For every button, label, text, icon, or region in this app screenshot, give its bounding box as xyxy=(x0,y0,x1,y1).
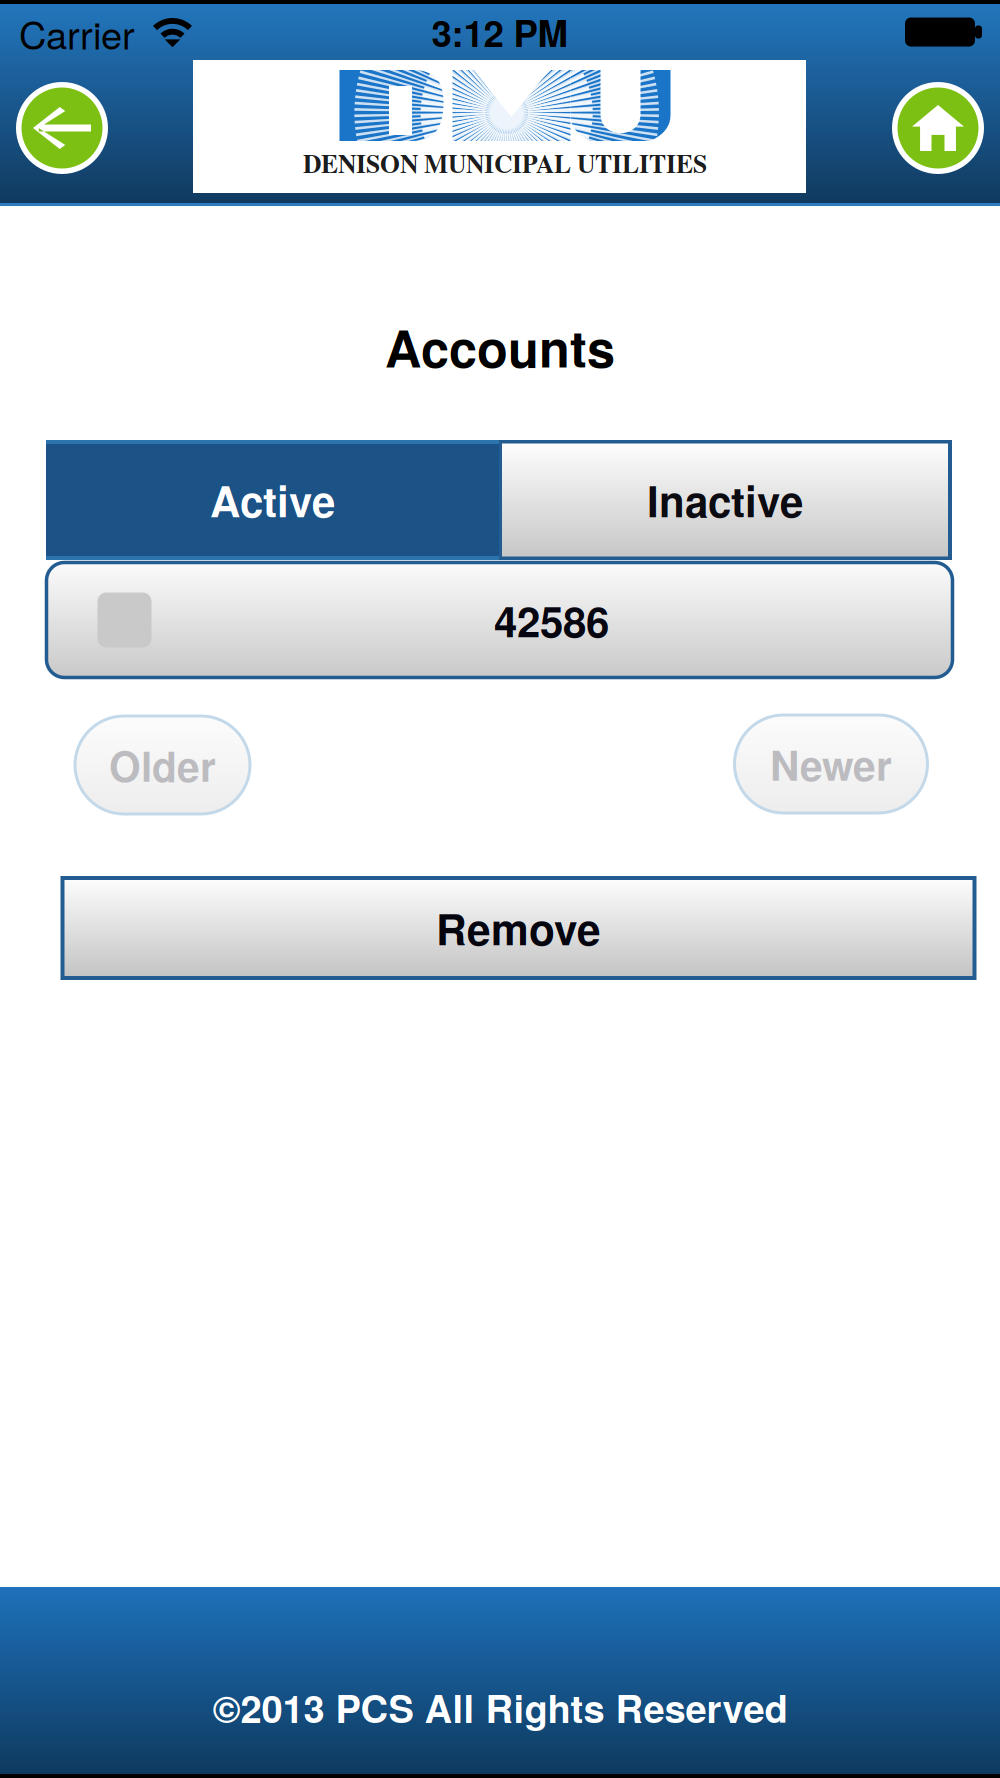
staticText: 42586 xyxy=(494,590,609,650)
staticText: Older xyxy=(109,736,216,794)
button[interactable]: Back xyxy=(7,73,117,183)
staticText: Newer xyxy=(770,735,892,793)
button[interactable]: 42586 xyxy=(46,562,952,677)
button[interactable]: Inactive xyxy=(502,443,948,556)
staticText: Inactive xyxy=(647,470,803,530)
staticText: Accounts xyxy=(385,311,615,383)
button[interactable]: Remove xyxy=(62,878,974,978)
button[interactable]: Older xyxy=(75,716,250,814)
staticText: DENISON MUNICIPAL UTILITIES xyxy=(303,144,707,182)
button[interactable]: Active xyxy=(46,442,499,558)
staticText: Remove xyxy=(436,898,601,958)
button[interactable]: Newer xyxy=(734,715,927,813)
staticText: Active xyxy=(210,470,335,530)
button[interactable]: Home xyxy=(883,73,993,183)
staticText: 3:12 PM xyxy=(431,6,568,58)
staticText: Carrier xyxy=(19,6,135,60)
staticText: ©2013 PCS All Rights Reserved xyxy=(212,1680,787,1735)
